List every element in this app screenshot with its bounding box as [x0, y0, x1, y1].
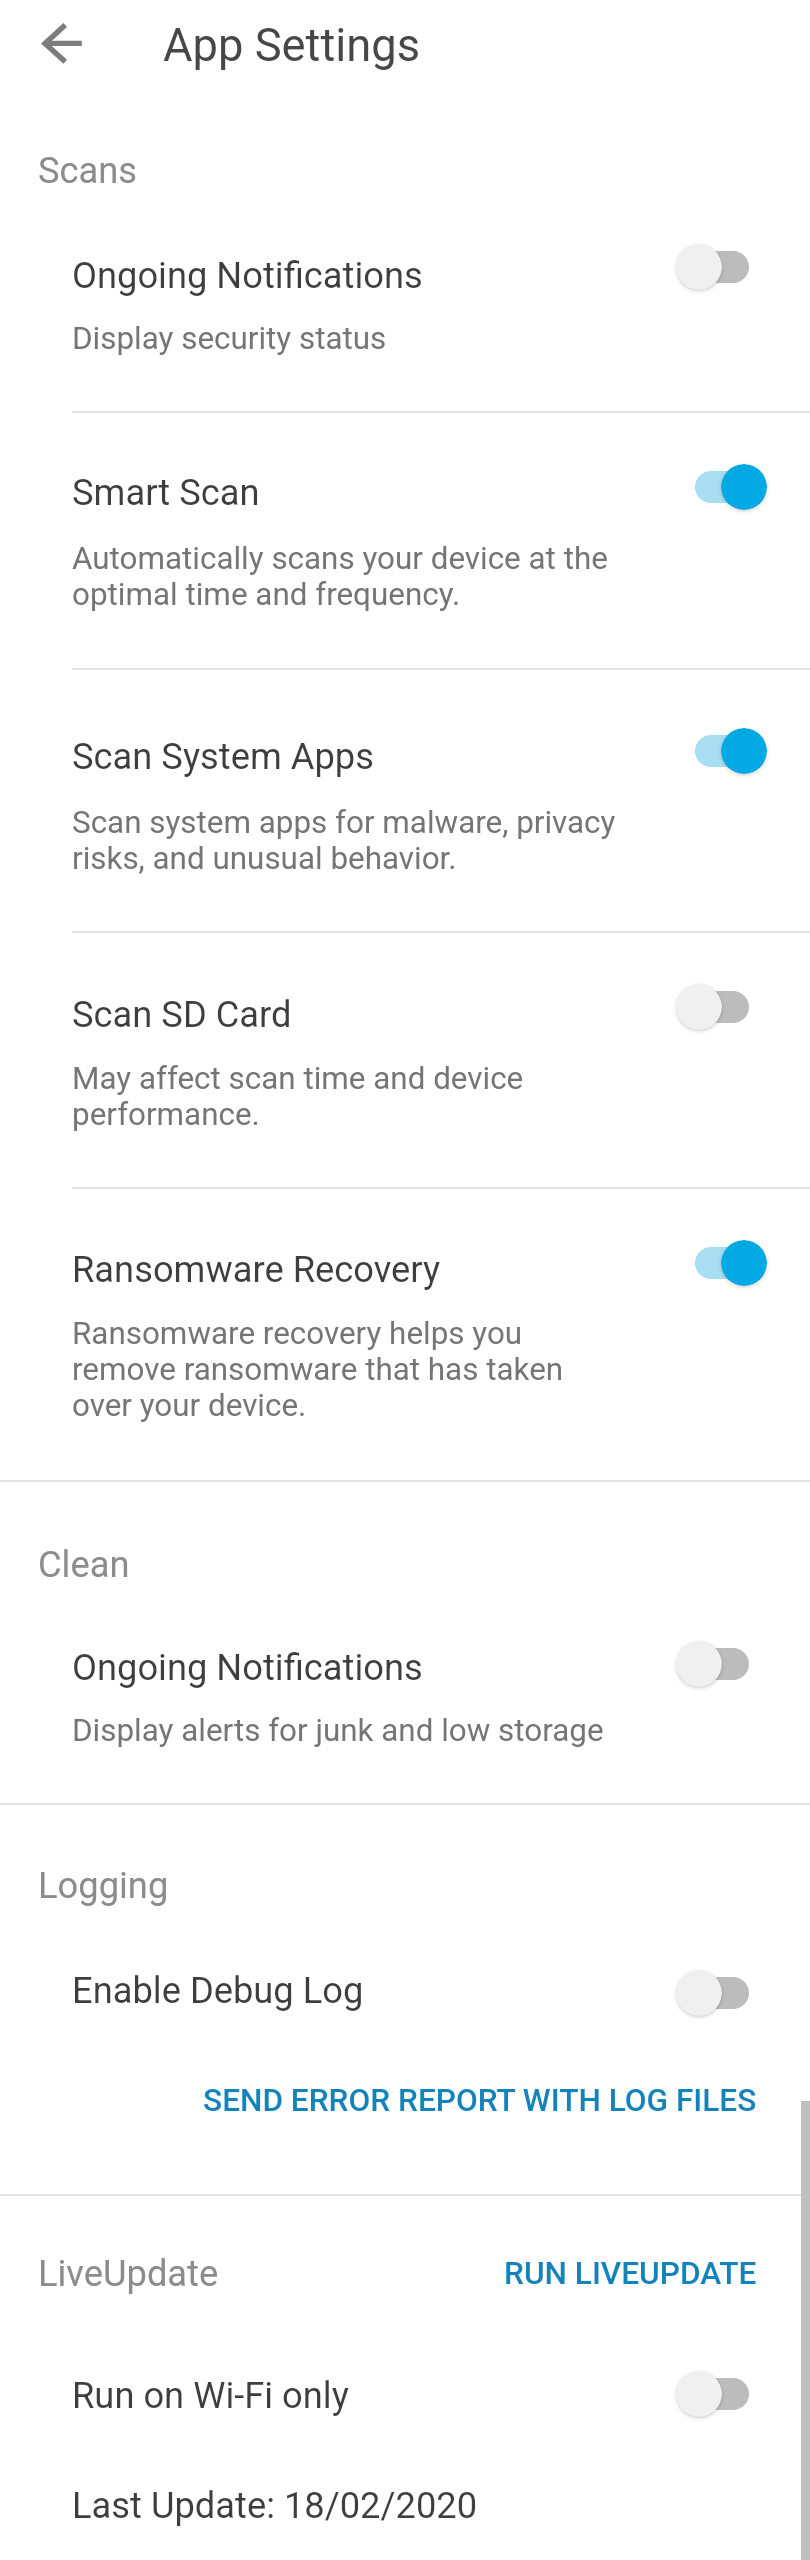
- staticText: Scan system apps for malware, privacy ri…: [72, 804, 616, 876]
- button[interactable]: SEND ERROR REPORT WITH LOG FILES: [0, 2053, 810, 2145]
- staticText: Run on Wi-Fi only: [72, 2372, 349, 2417]
- staticText: Ransomware recovery helps you remove ran…: [72, 1315, 564, 1423]
- staticText: Ongoing Notifications: [72, 1644, 423, 1689]
- staticText: Scan System Apps: [72, 733, 374, 778]
- staticText: Enable Debug Log: [72, 1967, 364, 2012]
- staticText: Automatically scans your device at the o…: [72, 540, 608, 612]
- staticText: Scans: [38, 151, 138, 192]
- staticText: SEND ERROR REPORT WITH LOG FILES: [203, 2080, 757, 2119]
- button[interactable]: RUN LIVEUPDATE: [0, 2235, 810, 2309]
- staticText: May affect scan time and device performa…: [72, 1060, 524, 1132]
- staticText: Display security status: [72, 320, 387, 356]
- button[interactable]: Off: [0, 1590, 810, 1802]
- staticText: Logging: [38, 1866, 169, 1907]
- staticText: Last Update: 18/02/2020: [72, 2482, 478, 2527]
- button[interactable]: Back: [7, 5, 83, 81]
- staticText: Display alerts for junk and low storage: [72, 1712, 604, 1748]
- staticText: Ongoing Notifications: [72, 252, 423, 297]
- button[interactable]: On: [0, 1189, 810, 1479]
- staticText: LiveUpdate: [38, 2254, 219, 2295]
- button[interactable]: Off: [0, 200, 810, 411]
- staticText: Clean: [38, 1545, 130, 1586]
- staticText: Ransomware Recovery: [72, 1246, 441, 1291]
- button[interactable]: Off: [0, 933, 810, 1186]
- button[interactable]: Off: [0, 2320, 810, 2450]
- button[interactable]: On: [0, 413, 810, 667]
- button[interactable]: On: [0, 670, 810, 930]
- button[interactable]: Off: [0, 1930, 810, 2050]
- staticText: RUN LIVEUPDATE: [504, 2253, 757, 2292]
- staticText: Scan SD Card: [72, 991, 292, 1036]
- staticText: Smart Scan: [72, 469, 260, 514]
- staticText: App Settings: [163, 20, 421, 72]
